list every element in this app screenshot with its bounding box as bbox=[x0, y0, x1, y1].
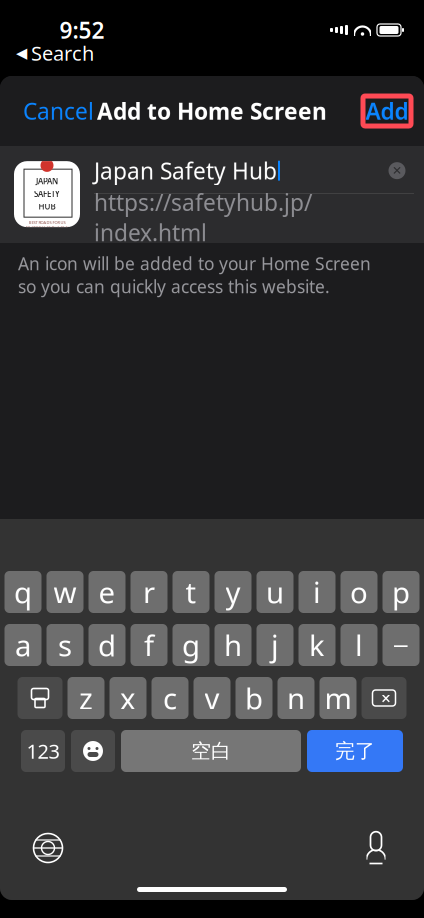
staticText: ✕ bbox=[392, 164, 402, 177]
button[interactable]: x bbox=[109, 677, 146, 719]
staticText: ◀ bbox=[16, 45, 27, 61]
staticText: r bbox=[143, 572, 155, 611]
staticText: m bbox=[324, 678, 351, 717]
button[interactable]: − bbox=[382, 624, 419, 666]
staticText: q bbox=[14, 572, 32, 611]
button[interactable]: t bbox=[172, 571, 209, 613]
button[interactable]: p bbox=[382, 571, 419, 613]
staticText: https://safetyhub.jp/index.html bbox=[94, 187, 312, 247]
button[interactable]: m bbox=[319, 677, 356, 719]
button[interactable]: b bbox=[235, 677, 272, 719]
staticText: c bbox=[163, 678, 177, 717]
staticText: o bbox=[350, 572, 368, 611]
button[interactable]: Shift bbox=[17, 677, 62, 719]
staticText: i bbox=[313, 572, 321, 611]
staticText: 完了 bbox=[335, 739, 375, 763]
button[interactable]: f bbox=[130, 624, 167, 666]
staticText: BEST ROADS FOR US bbox=[28, 220, 65, 225]
staticText: k bbox=[309, 625, 325, 664]
button[interactable]: o bbox=[340, 571, 377, 613]
staticText: l bbox=[355, 625, 363, 664]
staticText: Add to Home Screen bbox=[97, 96, 327, 126]
staticText: × bbox=[381, 686, 391, 709]
staticText: 9:52 bbox=[59, 15, 104, 45]
staticText: u bbox=[266, 572, 284, 611]
staticText: − bbox=[392, 625, 409, 664]
button[interactable]: w bbox=[46, 571, 83, 613]
staticText: Search bbox=[31, 40, 94, 66]
button[interactable]: n bbox=[277, 677, 314, 719]
button[interactable]: y bbox=[214, 571, 251, 613]
button[interactable]: ◀ bbox=[12, 38, 98, 68]
staticText: j bbox=[271, 625, 279, 664]
button[interactable]: Cancel bbox=[17, 88, 100, 134]
button[interactable]: h bbox=[214, 624, 251, 666]
staticText: z bbox=[79, 678, 93, 717]
button[interactable]: c bbox=[151, 677, 188, 719]
button[interactable]: k bbox=[298, 624, 335, 666]
staticText: t bbox=[185, 572, 196, 611]
button[interactable]: Dictation bbox=[354, 826, 398, 870]
button[interactable]: Clear title bbox=[380, 154, 414, 188]
button[interactable]: u bbox=[256, 571, 293, 613]
staticText: y bbox=[225, 572, 240, 611]
button[interactable]: Next keyboard bbox=[26, 826, 70, 870]
staticText: e bbox=[98, 572, 115, 611]
button[interactable]: g bbox=[172, 624, 209, 666]
button[interactable]: s bbox=[46, 624, 83, 666]
button[interactable]: Emoji bbox=[71, 730, 115, 772]
staticText: b bbox=[245, 678, 263, 717]
button[interactable]: q bbox=[4, 571, 41, 613]
staticText: Add bbox=[365, 96, 408, 126]
staticText: p bbox=[392, 572, 410, 611]
staticText: f bbox=[144, 625, 154, 664]
button[interactable]: a bbox=[4, 624, 41, 666]
staticText: a bbox=[15, 625, 31, 664]
staticText: h bbox=[224, 625, 242, 664]
button[interactable]: i bbox=[298, 571, 335, 613]
button[interactable]: l bbox=[340, 624, 377, 666]
staticText: HUB bbox=[38, 201, 55, 212]
button[interactable]: r bbox=[130, 571, 167, 613]
staticText: g bbox=[182, 625, 200, 664]
staticText: An icon will be added to your Home Scree… bbox=[18, 252, 371, 298]
button[interactable]: v bbox=[193, 677, 230, 719]
staticText: s bbox=[58, 625, 72, 664]
staticText: SAFETY bbox=[34, 188, 60, 199]
button[interactable]: 空白 bbox=[121, 730, 301, 772]
staticText: n bbox=[287, 678, 305, 717]
button[interactable]: j bbox=[256, 624, 293, 666]
button[interactable]: 完了 bbox=[307, 730, 403, 772]
staticText: 空白 bbox=[191, 739, 231, 763]
staticText: Cancel bbox=[23, 96, 94, 126]
staticText: w bbox=[53, 572, 76, 611]
staticText: d bbox=[98, 625, 116, 664]
staticText: 123 bbox=[26, 738, 59, 764]
button[interactable]: Add bbox=[363, 96, 411, 126]
staticText: Japan Safety Hub bbox=[94, 156, 277, 186]
staticText: TO STOP SAFE IN JAPAN bbox=[25, 225, 68, 230]
button[interactable]: e bbox=[88, 571, 125, 613]
button[interactable]: d bbox=[88, 624, 125, 666]
staticText: v bbox=[204, 678, 219, 717]
staticText: x bbox=[120, 678, 136, 717]
staticText: JAPAN bbox=[36, 176, 58, 186]
button[interactable]: 123 bbox=[21, 730, 65, 772]
button[interactable]: Delete bbox=[361, 677, 406, 719]
button[interactable]: z bbox=[67, 677, 104, 719]
